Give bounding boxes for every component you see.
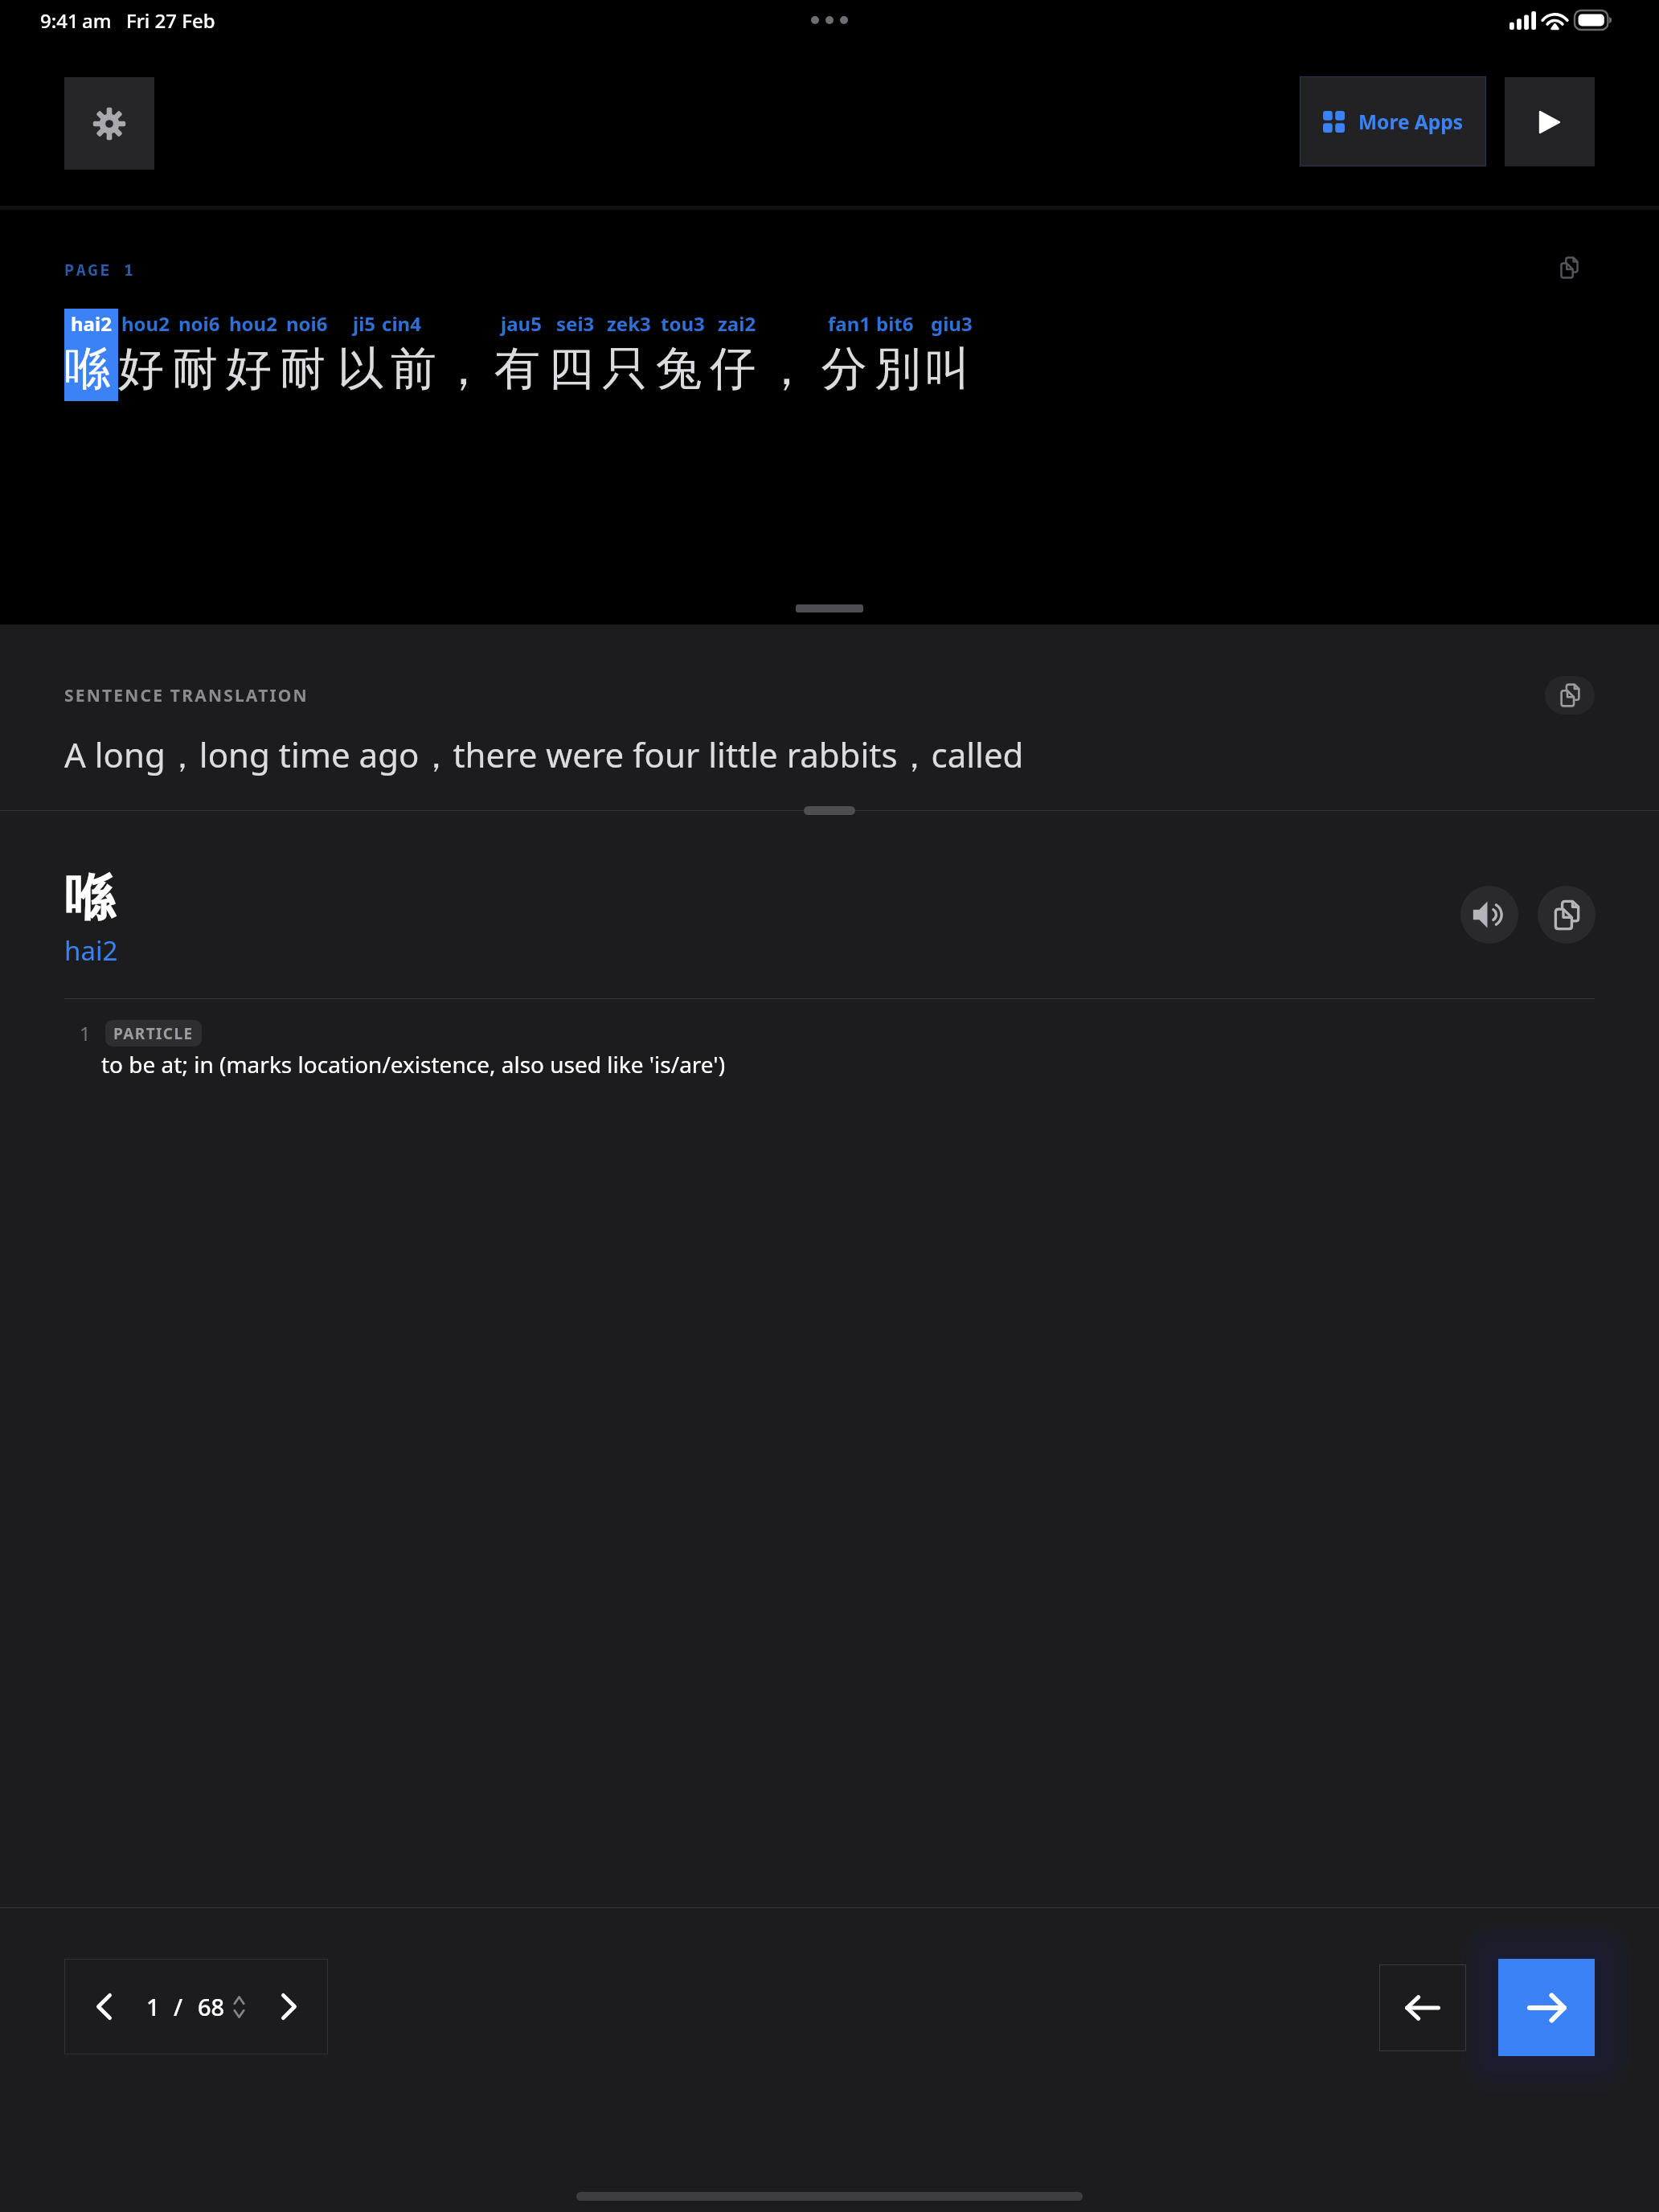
staticText: 只	[602, 340, 656, 398]
staticText: zek3	[607, 310, 651, 337]
staticText: More Apps	[1358, 109, 1464, 135]
button[interactable]: Copy page	[1551, 250, 1587, 285]
staticText: hou2	[121, 310, 170, 337]
button[interactable]: 1	[146, 1959, 245, 2054]
staticText: sei3	[556, 310, 595, 337]
staticText: giu3	[931, 310, 973, 337]
staticText: cin4	[382, 310, 421, 337]
button[interactable]: hou2	[118, 309, 172, 401]
staticText: 分別	[817, 340, 924, 398]
staticText: 68	[198, 1991, 225, 2022]
button[interactable]: ，	[764, 309, 817, 401]
staticText: 好	[226, 340, 280, 398]
button[interactable]: zai2	[710, 309, 764, 401]
staticText: 有	[494, 340, 548, 398]
button[interactable]: Copy translation	[1545, 676, 1595, 715]
button[interactable]: jau5	[494, 309, 548, 401]
staticText: /	[174, 1991, 183, 2022]
button[interactable]: ，	[440, 309, 494, 401]
staticText: 喺	[64, 866, 114, 929]
staticText: hai2	[71, 310, 112, 337]
button[interactable]: zek3	[602, 309, 656, 401]
staticText: PARTICLE	[113, 1023, 194, 1044]
staticText: zai2	[718, 310, 756, 337]
staticText: 喺	[64, 340, 118, 398]
staticText: 耐	[280, 340, 334, 398]
staticText: 四	[548, 340, 602, 398]
staticText: noi6	[178, 310, 220, 337]
button[interactable]: Next	[265, 1959, 312, 2054]
button[interactable]: noi6	[280, 309, 334, 401]
staticText: ，	[440, 340, 494, 398]
staticText: hou2	[229, 310, 277, 337]
staticText: 兔	[656, 340, 710, 398]
staticText: tou3	[661, 310, 705, 337]
button[interactable]: ji5	[334, 309, 440, 401]
staticText: to be at; in (marks location/existence, …	[101, 1049, 726, 1079]
button[interactable]: fan1	[817, 309, 924, 401]
button[interactable]: hou2	[226, 309, 280, 401]
button[interactable]: Settings	[64, 77, 154, 170]
button[interactable]: Play audio	[1460, 886, 1518, 944]
button[interactable]: noi6	[172, 309, 226, 401]
staticText: 9:41	[40, 7, 79, 34]
staticText: 耐	[172, 340, 226, 398]
staticText: 仔	[710, 340, 764, 398]
staticText: ，	[764, 340, 817, 398]
staticText: noi6	[286, 310, 328, 337]
staticText: am	[82, 7, 112, 34]
button[interactable]: Previous page	[1379, 1964, 1466, 2051]
staticText: A long，long time ago，there were four lit…	[64, 731, 1024, 777]
staticText: hai2	[64, 932, 118, 969]
staticText: fan1	[828, 310, 870, 337]
staticText: 叫	[924, 340, 978, 398]
staticText: ji5	[353, 310, 376, 337]
staticText: PAGE 1	[64, 259, 136, 281]
staticText: Fri 27 Feb	[126, 7, 215, 34]
staticText: jau5	[501, 310, 542, 337]
staticText: bit6	[876, 310, 914, 337]
button[interactable]: hai2	[64, 309, 118, 401]
button[interactable]: Play	[1505, 77, 1595, 166]
button[interactable]: Previous	[80, 1959, 127, 2054]
button[interactable]: Next page	[1498, 1959, 1595, 2056]
button[interactable]: sei3	[548, 309, 602, 401]
staticText: 1	[146, 1991, 160, 2022]
staticText: 好	[118, 340, 172, 398]
staticText: 以前	[334, 340, 440, 398]
button[interactable]: Copy word	[1538, 886, 1596, 944]
staticText: 1	[80, 1020, 91, 1047]
button[interactable]: giu3	[924, 309, 978, 401]
button[interactable]: tou3	[656, 309, 710, 401]
button[interactable]: More Apps	[1300, 76, 1486, 166]
staticText: SENTENCE TRANSLATION	[64, 684, 309, 707]
